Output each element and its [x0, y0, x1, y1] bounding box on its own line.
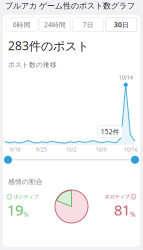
- staticText: 24時間: [44, 20, 66, 29]
- button[interactable]: 7日: [72, 18, 104, 32]
- staticText: 19: [7, 200, 23, 219]
- staticText: ポスト数の推移: [8, 61, 57, 69]
- staticText: 30日: [114, 20, 129, 29]
- staticText: ブルアカ ゲーム性のポスト数グラフ: [5, 1, 135, 11]
- button[interactable]: 24時間: [39, 18, 70, 32]
- staticText: 10/16: [124, 146, 138, 153]
- staticText: 感情の割合: [8, 178, 43, 186]
- staticText: 6時間: [13, 20, 31, 29]
- button[interactable]: 30日: [106, 18, 137, 32]
- staticText: %: [23, 210, 29, 219]
- staticText: 81: [114, 200, 130, 219]
- staticText: 10/14: [119, 74, 133, 81]
- staticText: 10/9: [95, 146, 106, 153]
- staticText: 9/18: [9, 146, 20, 153]
- staticText: 283件のポスト: [8, 38, 89, 54]
- staticText: ネガティブ: [104, 193, 129, 200]
- staticText: 10/2: [66, 146, 77, 153]
- staticText: %: [130, 210, 136, 219]
- button[interactable]: 日付範囲: [4, 156, 139, 164]
- button[interactable]: 6時間: [6, 18, 37, 32]
- staticText: 152件: [101, 127, 120, 136]
- staticText: 7日: [83, 20, 94, 29]
- staticText: 9/25: [36, 146, 47, 153]
- staticText: ポジティブ: [13, 193, 38, 200]
